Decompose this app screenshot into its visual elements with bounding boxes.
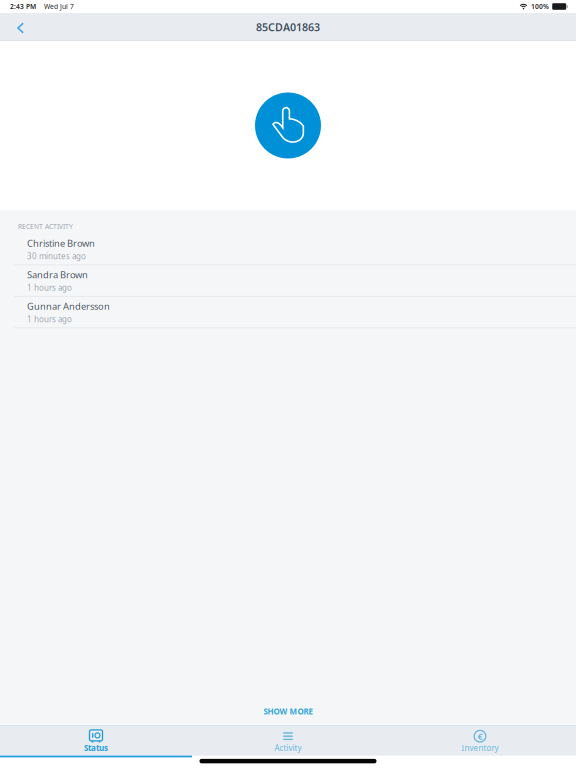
button[interactable]: Status: [0, 726, 192, 756]
button[interactable]: Activity: [192, 726, 384, 756]
staticText: SHOW MORE: [263, 706, 312, 717]
staticText: Gunnar Andersson: [27, 300, 110, 312]
staticText: 30 minutes ago: [27, 251, 86, 261]
button[interactable]: Sandra Brown: [0, 265, 576, 297]
staticText: €: [477, 730, 482, 742]
staticText: Inventory: [461, 743, 498, 753]
button[interactable]: Lock or unlock: [255, 92, 321, 158]
staticText: Status: [84, 743, 108, 753]
staticText: Wed Jul 7: [44, 2, 74, 11]
button[interactable]: Christine Brown: [0, 234, 576, 265]
button[interactable]: Back: [0, 13, 37, 41]
staticText: Sandra Brown: [27, 268, 88, 281]
staticText: 1 hours ago: [27, 282, 72, 293]
button[interactable]: €: [384, 726, 576, 756]
staticText: Activity: [274, 743, 301, 753]
staticText: 2:43 PM: [10, 2, 36, 11]
staticText: 1 hours ago: [27, 314, 72, 324]
staticText: RECENT ACTIVITY: [18, 222, 73, 231]
staticText: Christine Brown: [27, 237, 95, 249]
button[interactable]: Gunnar Andersson: [0, 297, 576, 328]
staticText: 100%: [531, 2, 549, 11]
staticText: 85CDA01863: [256, 20, 320, 34]
button[interactable]: SHOW MORE: [0, 697, 576, 725]
